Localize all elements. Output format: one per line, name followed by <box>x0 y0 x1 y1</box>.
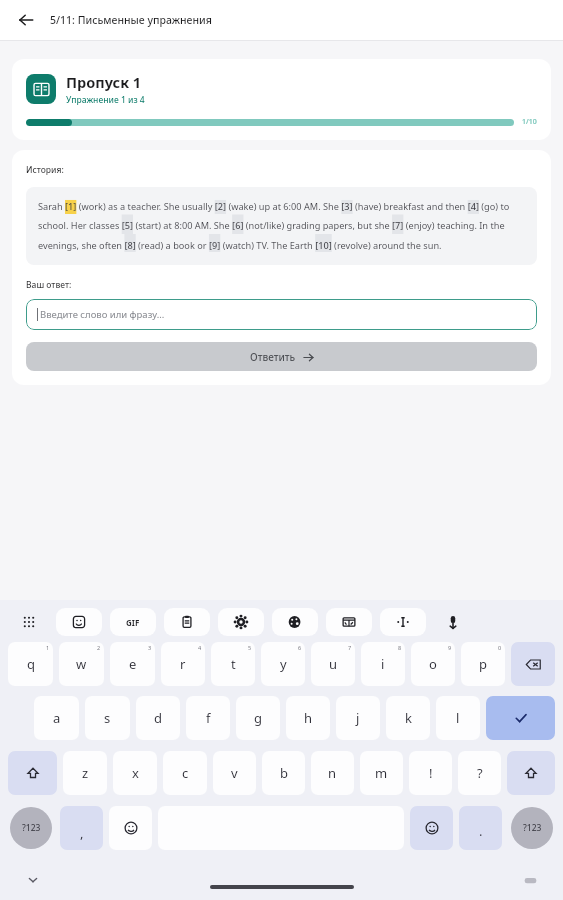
staticText: ?123 <box>523 822 542 834</box>
button[interactable]: ?123 <box>511 807 553 849</box>
staticText: s <box>104 709 111 727</box>
button[interactable]: Shift <box>507 751 555 795</box>
button[interactable]: Comma <box>60 806 103 850</box>
staticText: История: <box>26 164 64 176</box>
button[interactable]: Stickers <box>56 608 102 636</box>
button[interactable]: GIF <box>110 608 156 636</box>
button[interactable]: a <box>34 696 79 740</box>
button[interactable]: b <box>262 751 305 795</box>
staticText: e <box>129 655 137 673</box>
staticText: p <box>479 655 487 673</box>
button[interactable]: k <box>386 696 430 740</box>
button[interactable]: j <box>336 696 380 740</box>
staticText: . <box>479 822 483 840</box>
staticText: d <box>154 709 162 727</box>
button[interactable]: Text editing <box>380 608 426 636</box>
button[interactable]: y <box>261 642 305 686</box>
button[interactable]: Themes <box>272 608 318 636</box>
button[interactable]: Translate <box>326 608 372 636</box>
staticText: x <box>132 764 139 782</box>
button[interactable]: u <box>311 642 355 686</box>
staticText: w <box>76 655 87 673</box>
button[interactable]: Back <box>12 6 40 34</box>
button[interactable]: v <box>213 751 256 795</box>
button[interactable]: o <box>411 642 455 686</box>
button[interactable]: d <box>136 696 180 740</box>
staticText: Sarah [1] (work) as a teacher. She usual… <box>38 200 525 252</box>
staticText: j <box>356 709 360 727</box>
button[interactable]: ?123 <box>10 807 52 849</box>
staticText: o <box>429 655 437 673</box>
staticText: ?123 <box>22 822 41 834</box>
button[interactable]: Emoji <box>109 806 152 850</box>
staticText: l <box>456 709 460 727</box>
staticText: 1/10 <box>522 117 537 127</box>
button[interactable]: Введите слово или фразу... <box>26 299 537 330</box>
staticText: m <box>375 764 388 782</box>
button[interactable]: s <box>85 696 130 740</box>
button[interactable]: Backspace <box>511 642 555 686</box>
staticText: 6 <box>298 644 302 651</box>
staticText: Упражнение 1 из 4 <box>66 94 145 106</box>
button[interactable]: ! <box>409 751 452 795</box>
staticText: ! <box>429 764 433 782</box>
button[interactable]: Settings <box>218 608 264 636</box>
staticText: 1 <box>46 644 50 651</box>
button[interactable]: q <box>8 642 53 686</box>
button[interactable]: Voice input <box>434 608 472 636</box>
staticText: , <box>80 824 84 842</box>
button[interactable]: Clipboard <box>164 608 210 636</box>
button[interactable]: l <box>436 696 480 740</box>
staticText: g <box>254 709 262 727</box>
staticText: k <box>405 709 412 727</box>
button[interactable]: Keyboard layout <box>10 608 48 636</box>
staticText: a <box>53 709 61 727</box>
button[interactable]: Enter <box>486 696 555 740</box>
button[interactable]: r <box>161 642 205 686</box>
button[interactable]: Shift <box>8 751 57 795</box>
button[interactable]: Ответить <box>26 342 537 371</box>
staticText: 4 <box>198 644 202 651</box>
staticText: b <box>280 764 288 782</box>
button[interactable]: Hide keyboard <box>22 869 44 891</box>
staticText: t <box>231 655 236 673</box>
staticText: z <box>82 764 89 782</box>
staticText: ? <box>477 764 483 782</box>
staticText: Ваш ответ: <box>26 279 72 291</box>
button[interactable]: z <box>63 751 107 795</box>
staticText: v <box>231 764 238 782</box>
staticText: 5 <box>248 644 252 651</box>
staticText: f <box>206 709 211 727</box>
button[interactable]: ? <box>458 751 501 795</box>
button[interactable]: i <box>361 642 405 686</box>
button[interactable]: p <box>461 642 505 686</box>
button[interactable]: n <box>311 751 354 795</box>
staticText: 2 <box>97 644 101 651</box>
button[interactable]: m <box>360 751 403 795</box>
staticText: c <box>182 764 189 782</box>
staticText: r <box>180 655 186 673</box>
staticText: Введите слово или фразу... <box>40 308 165 321</box>
staticText: n <box>328 764 337 782</box>
button[interactable]: Switch keyboard <box>519 869 541 891</box>
button[interactable]: Emoji <box>410 806 453 850</box>
staticText: 5/11: Письменные упражнения <box>50 13 212 27</box>
button[interactable]: e <box>110 642 155 686</box>
button[interactable]: g <box>236 696 280 740</box>
staticText: GIF <box>126 617 140 628</box>
staticText: y <box>280 655 287 673</box>
staticText: h <box>304 709 313 727</box>
staticText: u <box>329 655 338 673</box>
button[interactable]: Period <box>459 806 502 850</box>
button[interactable]: f <box>186 696 230 740</box>
staticText: 8 <box>398 644 402 651</box>
button[interactable]: x <box>113 751 157 795</box>
staticText: Ответить <box>250 350 296 364</box>
button[interactable]: t <box>211 642 255 686</box>
button[interactable]: c <box>163 751 207 795</box>
button[interactable]: h <box>286 696 330 740</box>
button[interactable]: w <box>59 642 104 686</box>
staticText: 9 <box>448 644 452 651</box>
staticText: Пропуск 1 <box>66 72 142 92</box>
